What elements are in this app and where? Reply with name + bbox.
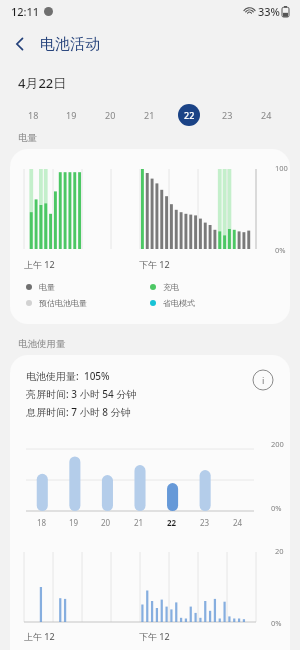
staticText: 22: [167, 517, 177, 528]
button[interactable]: Back: [0, 24, 40, 64]
staticText: 20: [105, 109, 116, 121]
staticText: 亮屏时间: 3 小时 54 分钟: [26, 387, 137, 401]
button[interactable]: 23: [208, 109, 247, 121]
button[interactable]: 24: [247, 109, 286, 121]
staticText: 电池使用量: [18, 338, 66, 350]
staticText: 0%: [271, 503, 282, 513]
staticText: 22: [184, 109, 195, 121]
staticText: 电量: [39, 282, 55, 292]
staticText: 下午 12: [139, 630, 170, 642]
staticText: 上午 12: [24, 258, 55, 270]
staticText: 18: [37, 517, 47, 528]
staticText: 4月22日: [18, 74, 67, 92]
staticText: 下午 12: [139, 258, 170, 270]
staticText: 上午 12: [24, 630, 55, 642]
staticText: 21: [134, 517, 144, 528]
button[interactable]: 20: [91, 109, 130, 121]
staticText: 100: [275, 163, 288, 173]
staticText: 24: [233, 517, 243, 528]
button[interactable]: 19: [52, 109, 91, 121]
staticText: 19: [69, 517, 79, 528]
button[interactable]: 21: [130, 109, 169, 121]
button[interactable]: 22: [169, 104, 208, 126]
staticText: 充电: [163, 282, 179, 292]
staticText: 0%: [275, 245, 286, 255]
staticText: 23: [200, 517, 210, 528]
staticText: 19: [66, 109, 77, 121]
staticText: 省电模式: [163, 298, 195, 308]
staticText: 电池使用量: 105%: [26, 369, 110, 383]
staticText: 20: [275, 546, 284, 556]
button[interactable]: 18: [14, 109, 52, 121]
button[interactable]: Info: [252, 369, 274, 391]
staticText: 电量: [18, 132, 37, 144]
staticText: 21: [144, 109, 155, 121]
staticText: 电池活动: [40, 35, 100, 54]
staticText: 200: [271, 439, 284, 449]
staticText: 预估电池电量: [39, 298, 87, 308]
staticText: 33%: [258, 4, 280, 19]
staticText: 20: [101, 517, 111, 528]
staticText: 23: [222, 109, 233, 121]
staticText: 0%: [271, 618, 282, 628]
staticText: 18: [28, 109, 39, 121]
staticText: 24: [261, 109, 272, 121]
staticText: 12:11: [11, 4, 40, 19]
staticText: i: [262, 374, 265, 386]
staticText: 息屏时间: 7 小时 8 分钟: [26, 405, 131, 419]
